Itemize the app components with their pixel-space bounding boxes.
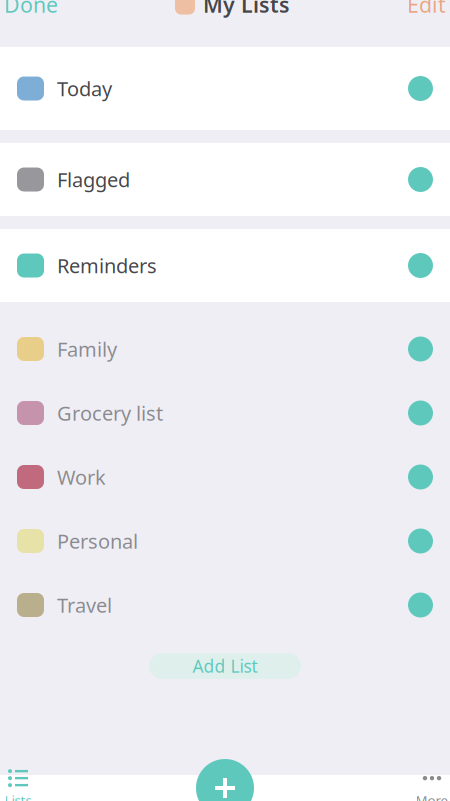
button[interactable]: Reminders bbox=[0, 229, 450, 302]
button[interactable]: Travel bbox=[0, 573, 450, 637]
staticText: Personal bbox=[57, 528, 138, 554]
button[interactable]: Today bbox=[0, 47, 450, 130]
button[interactable]: Add List bbox=[149, 653, 301, 679]
staticText: More bbox=[415, 791, 448, 801]
button[interactable]: Lists bbox=[0, 767, 36, 801]
button[interactable]: New Reminder bbox=[196, 759, 254, 801]
button[interactable]: Work bbox=[0, 445, 450, 509]
staticText: Grocery list bbox=[57, 400, 163, 426]
staticText: Lists bbox=[4, 791, 31, 801]
staticText: Work bbox=[57, 464, 106, 490]
button[interactable]: Flagged bbox=[0, 143, 450, 216]
button[interactable]: Personal bbox=[0, 509, 450, 573]
button[interactable]: Family bbox=[0, 317, 450, 381]
staticText: Done bbox=[4, 0, 58, 19]
staticText: Reminders bbox=[57, 252, 157, 279]
button[interactable]: More bbox=[414, 767, 450, 801]
staticText: Flagged bbox=[57, 166, 130, 193]
staticText: Add List bbox=[192, 654, 257, 677]
staticText: Today bbox=[57, 75, 112, 102]
staticText: My Lists bbox=[203, 0, 290, 19]
button[interactable]: Done bbox=[4, 0, 58, 19]
staticText: Family bbox=[57, 336, 117, 362]
staticText: Travel bbox=[57, 592, 112, 618]
button[interactable]: Grocery list bbox=[0, 381, 450, 445]
button[interactable]: Edit bbox=[407, 0, 446, 19]
staticText: Edit bbox=[407, 0, 446, 19]
